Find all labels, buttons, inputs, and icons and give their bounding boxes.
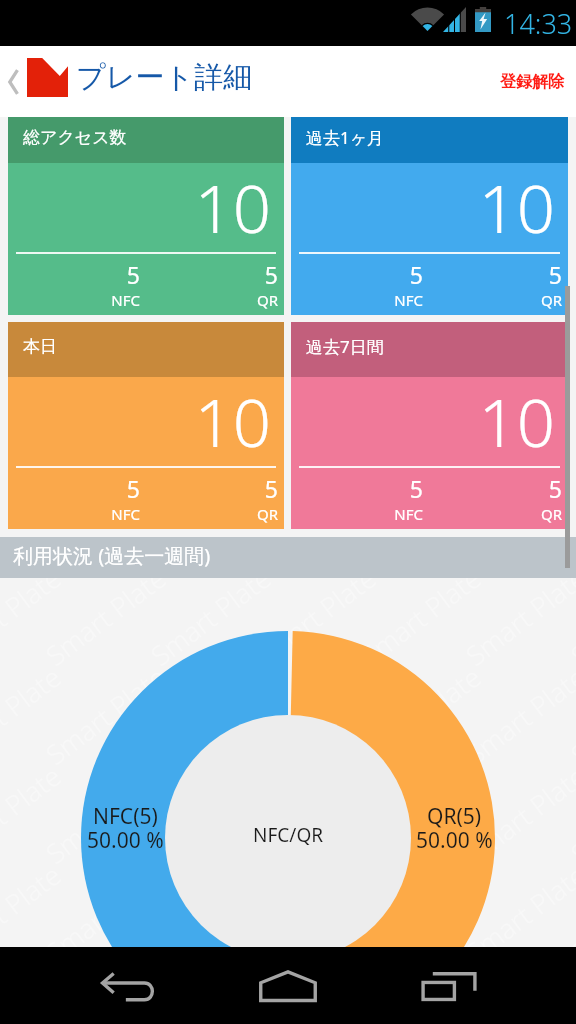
staticText: 14:33 xyxy=(504,5,573,42)
staticText: プレート詳細 xyxy=(76,59,253,96)
staticText: Smart Plate xyxy=(143,856,278,947)
staticText: Smart Plate xyxy=(458,658,576,773)
staticText: 10 xyxy=(291,375,555,464)
staticText: QR(5) xyxy=(427,802,482,831)
staticText: Smart Plate xyxy=(353,658,488,773)
staticText: 5 xyxy=(126,473,140,504)
staticText: NFC xyxy=(394,290,423,310)
staticText: Smart Plate xyxy=(143,578,278,674)
staticText: QR xyxy=(256,290,278,310)
staticText: 10 xyxy=(291,161,555,250)
staticText: Smart Plate xyxy=(458,856,576,947)
staticText: Smart Plate xyxy=(458,757,576,872)
staticText: 本日 xyxy=(23,336,57,357)
button[interactable]: 過去1ヶ月 xyxy=(291,117,568,315)
staticText: 5 xyxy=(548,473,562,504)
staticText: 利用状況 (過去一週間) xyxy=(13,542,211,569)
staticText: NFC xyxy=(111,504,140,524)
staticText: Smart Plate xyxy=(248,856,383,947)
staticText: NFC/QR xyxy=(253,822,324,848)
staticText: 5 xyxy=(126,259,140,290)
button[interactable]: 総アクセス数 xyxy=(8,117,284,315)
staticText: QR xyxy=(256,504,278,524)
staticText: Smart Plate xyxy=(143,658,278,773)
staticText: 50.00 % xyxy=(416,826,493,855)
button[interactable]: 本日 xyxy=(8,322,284,529)
staticText: Smart Plate xyxy=(38,757,173,872)
button[interactable]: Home xyxy=(241,947,335,1024)
staticText: 50.00 % xyxy=(87,826,164,855)
button[interactable]: Back xyxy=(82,947,175,1024)
button[interactable]: 過去7日間 xyxy=(291,322,568,529)
staticText: 登録解除 xyxy=(500,72,564,92)
staticText: 5 xyxy=(264,473,278,504)
staticText: NFC(5) xyxy=(93,802,158,831)
staticText: NFC xyxy=(394,504,423,524)
button[interactable]: Back xyxy=(0,56,26,108)
staticText: NFC xyxy=(111,290,140,310)
staticText: 5 xyxy=(409,259,423,290)
staticText: 過去1ヶ月 xyxy=(306,126,385,149)
staticText: 総アクセス数 xyxy=(23,127,127,148)
staticText: QR xyxy=(540,290,562,310)
staticText: 10 xyxy=(8,375,271,464)
staticText: Smart Plate xyxy=(248,578,383,674)
staticText: 10 xyxy=(8,161,271,250)
staticText: 過去7日間 xyxy=(306,335,384,358)
staticText: 5 xyxy=(264,259,278,290)
staticText: Smart Plate xyxy=(248,757,383,872)
staticText: Smart Plate xyxy=(143,757,278,872)
staticText: Smart Plate xyxy=(353,578,488,674)
staticText: Smart Plate xyxy=(248,658,383,773)
button[interactable]: Recents xyxy=(402,947,496,1024)
staticText: Smart Plate xyxy=(38,578,173,674)
staticText: Smart Plate xyxy=(353,856,488,947)
staticText: Smart Plate xyxy=(38,658,173,773)
button[interactable]: 登録解除 xyxy=(494,60,570,104)
staticText: QR xyxy=(540,504,562,524)
staticText: 5 xyxy=(409,473,423,504)
staticText: Smart Plate xyxy=(38,856,173,947)
staticText: 5 xyxy=(548,259,562,290)
staticText: Smart Plate xyxy=(353,757,488,872)
